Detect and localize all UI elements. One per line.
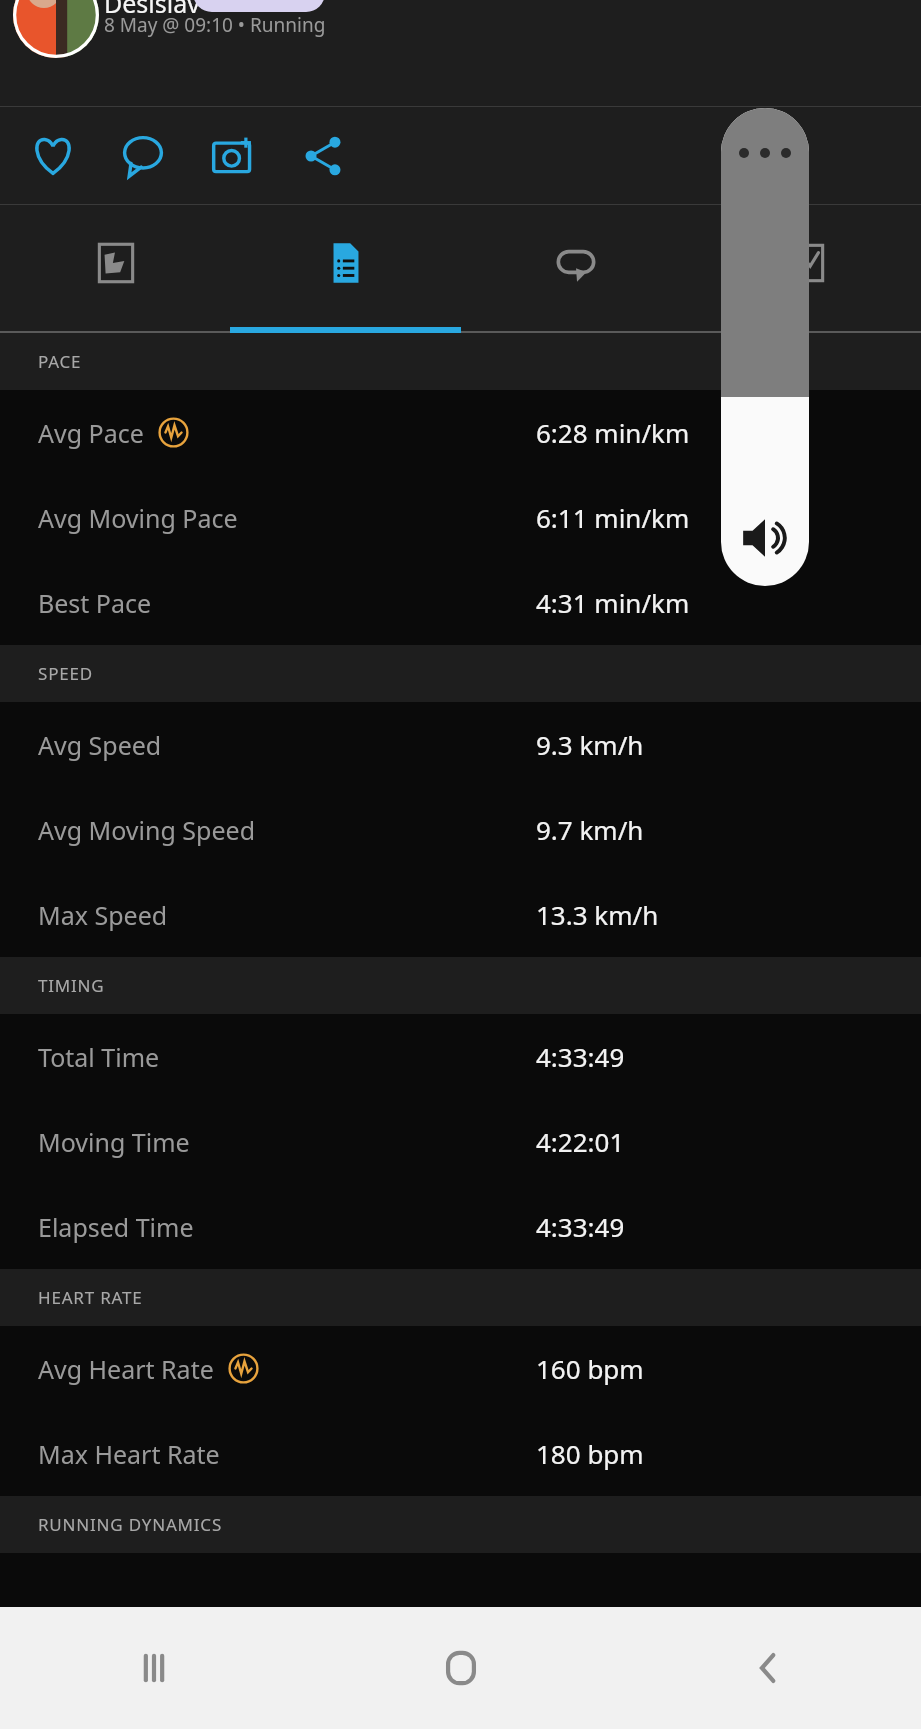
button[interactable]: Max Heart Rate xyxy=(0,1411,921,1496)
staticText: Max Heart Rate xyxy=(38,1437,220,1471)
button[interactable]: Comment xyxy=(112,125,174,187)
button[interactable]: Home xyxy=(307,1607,614,1729)
other: Device source xyxy=(158,417,189,448)
staticText: 6:28 min/km xyxy=(536,415,690,450)
staticText: 9.3 km/h xyxy=(536,727,644,762)
staticText: Moving Time xyxy=(38,1125,190,1159)
button[interactable]: Max Speed xyxy=(0,872,921,957)
staticText: HEART RATE xyxy=(38,1286,143,1309)
button[interactable]: Laps xyxy=(461,205,691,333)
button[interactable]: Avg Moving Speed xyxy=(0,787,921,872)
staticText: 8 May @ 09:10 • Running xyxy=(104,12,326,38)
button[interactable]: Share xyxy=(292,125,354,187)
staticText: Avg Moving Speed xyxy=(38,813,256,847)
button[interactable]: Best Pace xyxy=(0,560,921,645)
button[interactable]: Total Time xyxy=(0,1014,921,1099)
staticText: Desislav xyxy=(104,0,200,20)
staticText: 180 bpm xyxy=(536,1436,644,1471)
button[interactable]: Moving Time xyxy=(0,1099,921,1184)
other: Device source xyxy=(228,1353,259,1384)
button[interactable]: Add photo xyxy=(202,125,264,187)
staticText: Max Speed xyxy=(38,898,168,932)
button[interactable]: Avg Speed xyxy=(0,702,921,787)
staticText: 4:22:01 xyxy=(536,1124,625,1159)
staticText: Avg Pace xyxy=(38,416,144,450)
staticText: 160 bpm xyxy=(536,1351,644,1386)
staticText: Elapsed Time xyxy=(38,1210,194,1244)
button[interactable]: Recent apps xyxy=(0,1607,307,1729)
button[interactable]: Avg Moving Pace xyxy=(0,475,921,560)
button[interactable]: Back xyxy=(614,1607,921,1729)
staticText: Best Pace xyxy=(38,586,152,620)
button[interactable]: Avg Heart Rate xyxy=(0,1326,921,1411)
staticText: 4:33:49 xyxy=(536,1039,625,1074)
staticText: RUNNING DYNAMICS xyxy=(38,1513,223,1536)
staticText: SPEED xyxy=(38,662,93,685)
button[interactable]: Like xyxy=(22,125,84,187)
button[interactable]: Charts xyxy=(691,205,921,333)
staticText: 9.7 km/h xyxy=(536,812,644,847)
staticText: 13.3 km/h xyxy=(536,897,659,932)
staticText: Avg Heart Rate xyxy=(38,1352,214,1386)
staticText: 4:31 min/km xyxy=(536,585,690,620)
button[interactable]: Elapsed Time xyxy=(0,1184,921,1269)
staticText: PACE xyxy=(38,350,82,373)
staticText: TIMING xyxy=(38,974,105,997)
button[interactable]: Avg Pace xyxy=(0,390,921,475)
staticText: Total Time xyxy=(38,1040,160,1074)
staticText: Avg Speed xyxy=(38,728,162,762)
staticText: Avg Moving Pace xyxy=(38,501,238,535)
button[interactable]: Details xyxy=(231,205,461,333)
button[interactable]: Map xyxy=(0,205,231,333)
button[interactable]: Volume slider xyxy=(721,108,809,586)
staticText: 6:11 min/km xyxy=(536,500,690,535)
staticText: 4:33:49 xyxy=(536,1209,625,1244)
